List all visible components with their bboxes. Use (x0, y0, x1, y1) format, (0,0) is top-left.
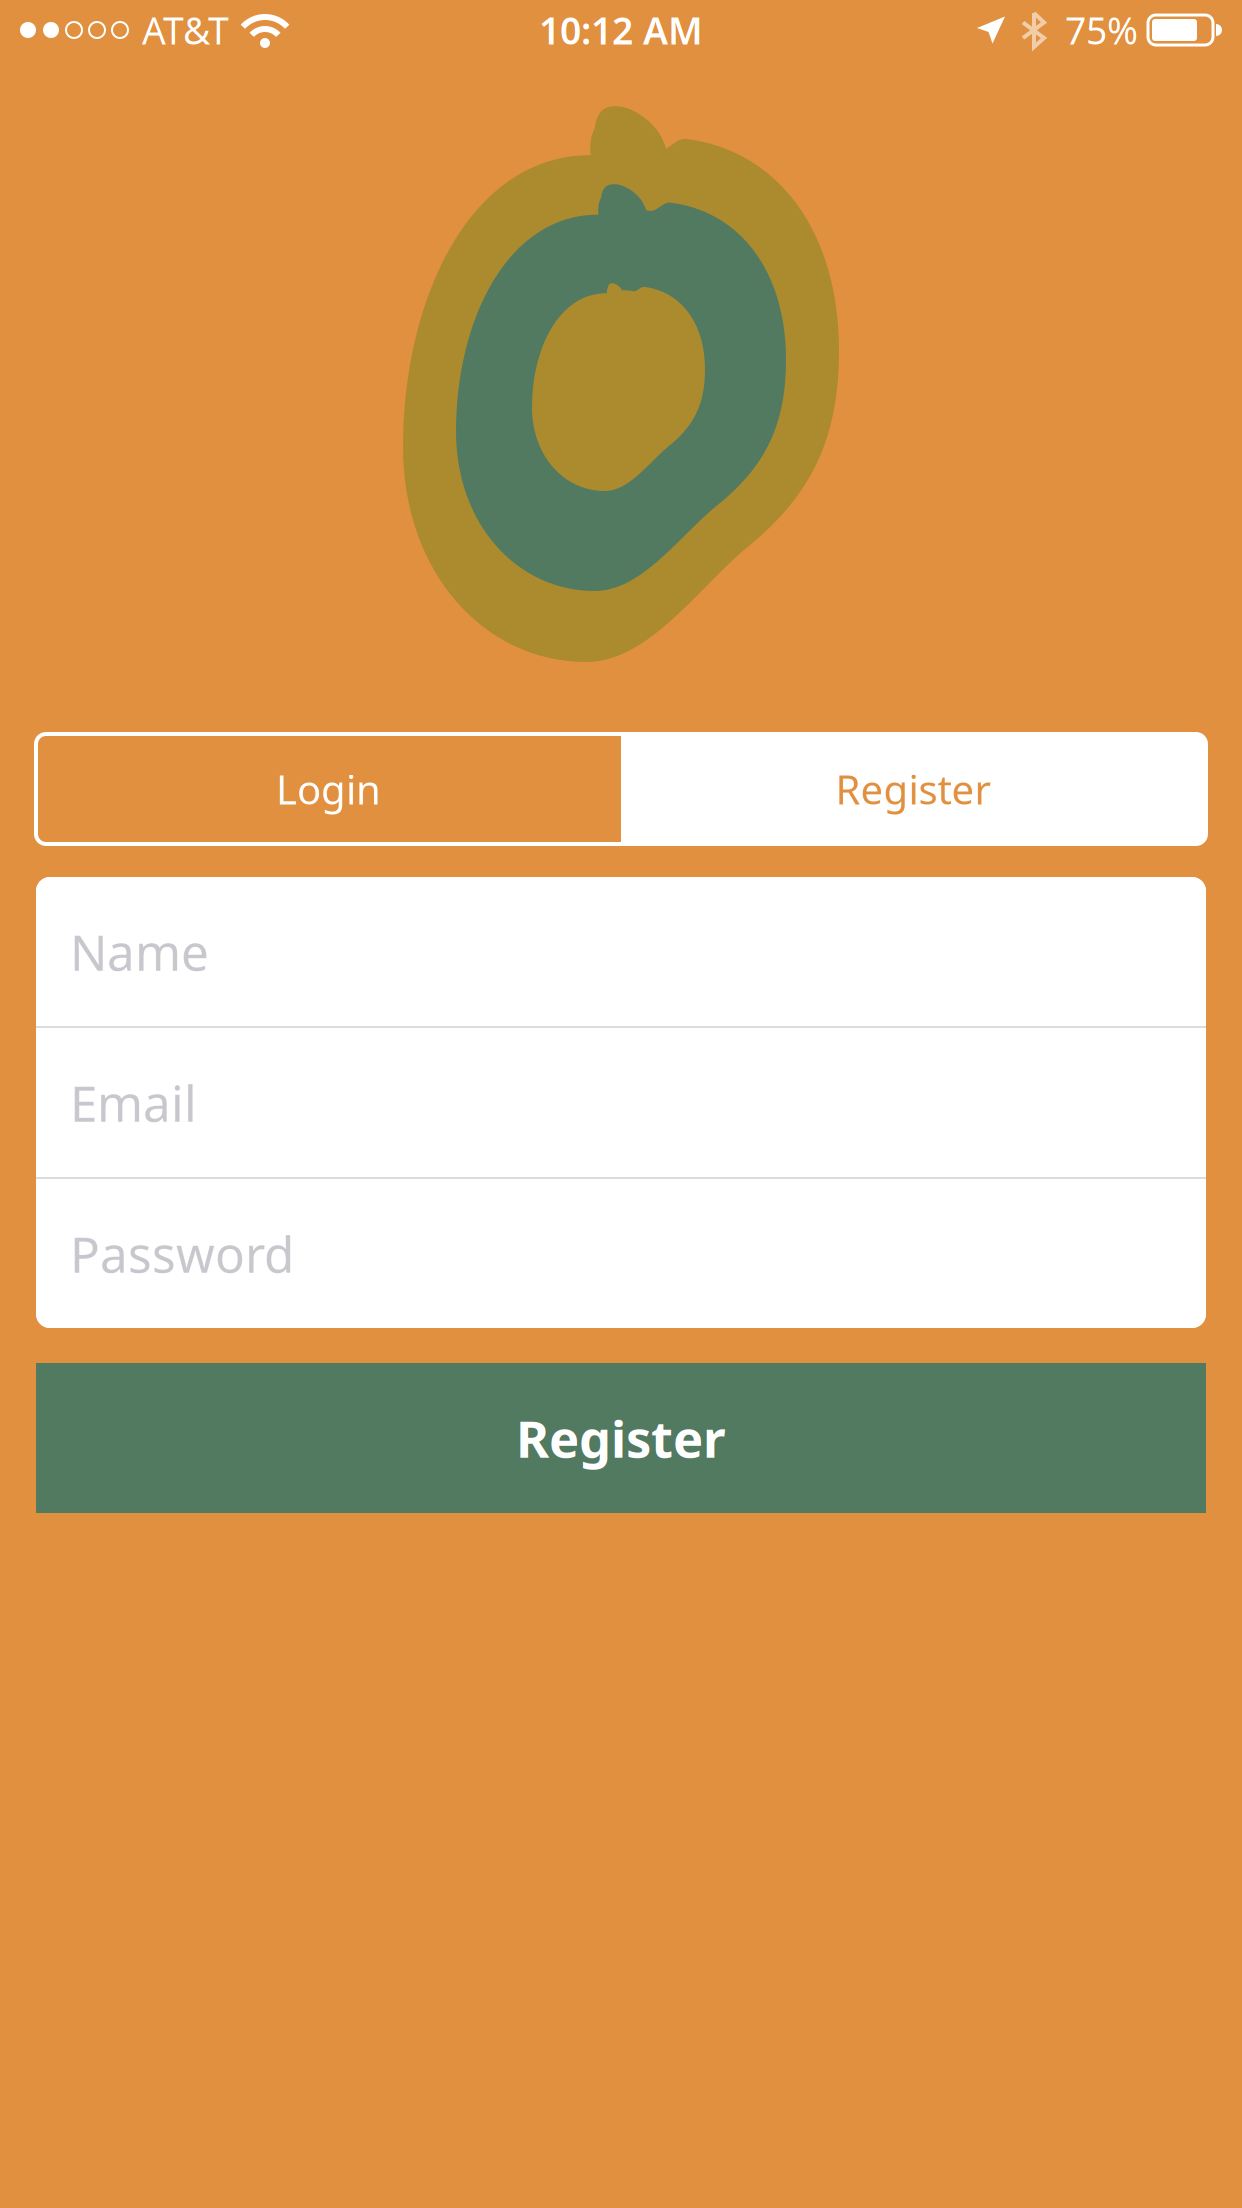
staticText: Name (70, 919, 209, 984)
staticText: 75% (1065, 5, 1138, 55)
staticText: Login (276, 762, 381, 815)
button[interactable]: Login (36, 734, 621, 844)
button[interactable]: Register (36, 1363, 1206, 1513)
button[interactable]: Register (621, 734, 1206, 844)
staticText: Register (516, 1404, 726, 1472)
staticText: 10:12 AM (539, 5, 703, 55)
staticText: AT&T (142, 5, 229, 55)
button[interactable]: Email (36, 1028, 1206, 1177)
button[interactable]: Password (36, 1179, 1206, 1328)
button[interactable]: Name (36, 877, 1206, 1026)
staticText: Register (835, 762, 991, 815)
staticText: Password (70, 1221, 294, 1286)
staticText: Email (70, 1070, 197, 1135)
